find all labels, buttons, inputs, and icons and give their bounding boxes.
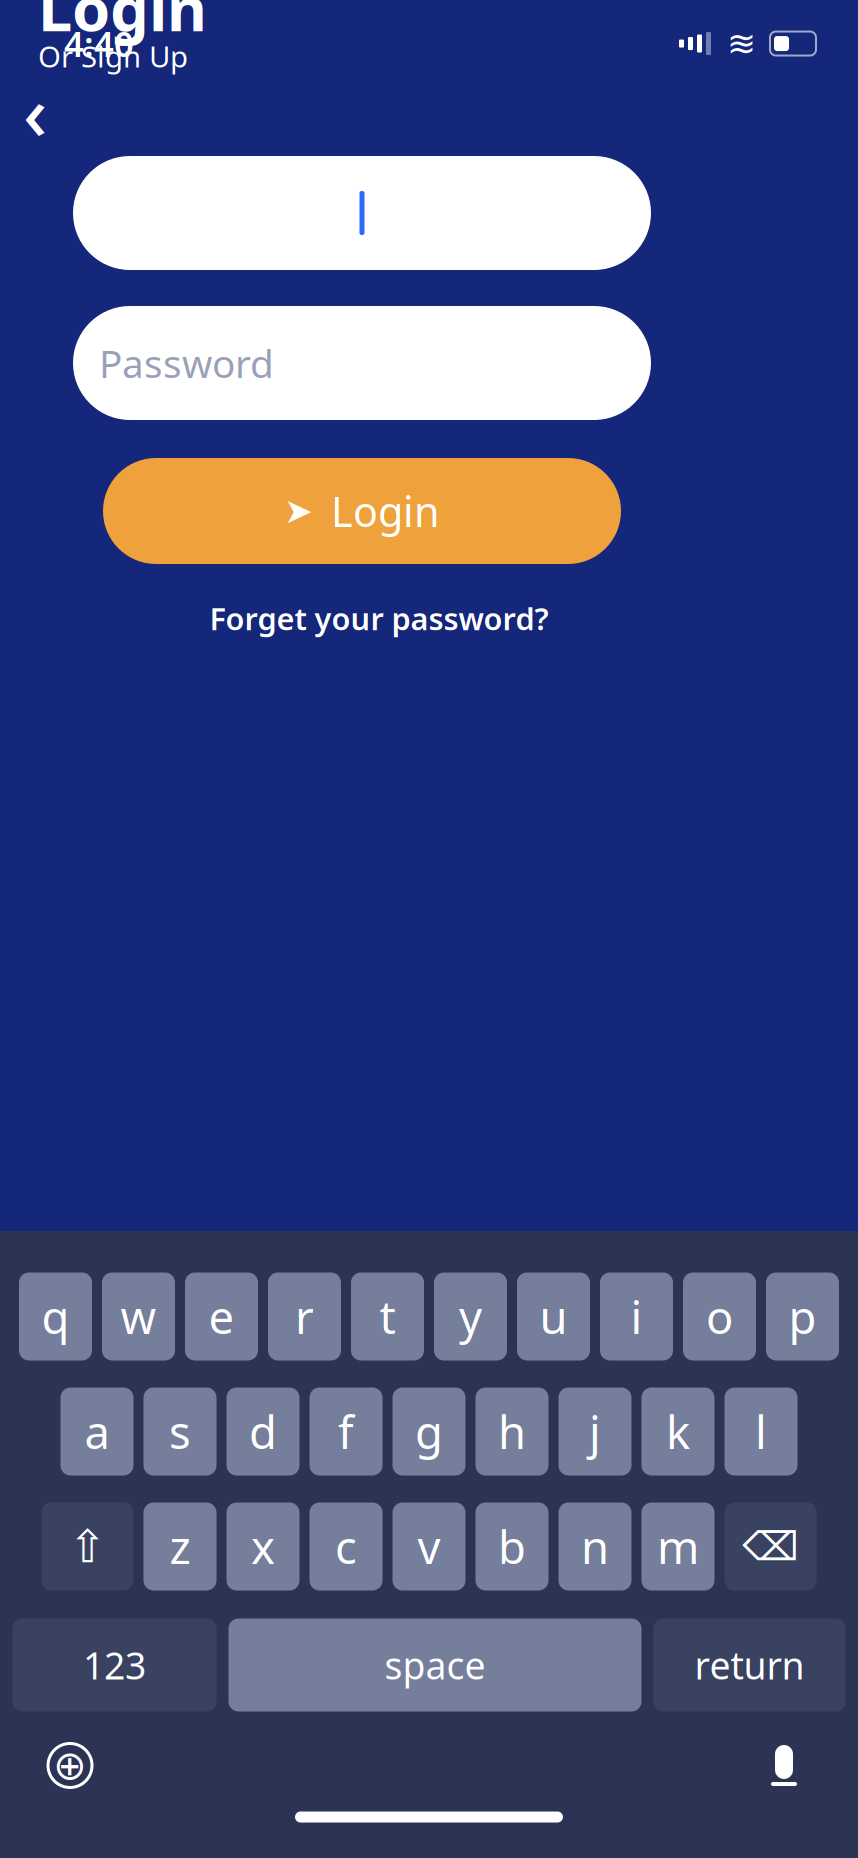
button[interactable]: l	[724, 1387, 797, 1475]
button[interactable]: q	[19, 1272, 92, 1360]
staticText: 123	[83, 1640, 146, 1690]
staticText: m	[657, 1516, 699, 1577]
staticText: s	[169, 1401, 191, 1462]
staticText: y	[459, 1286, 482, 1347]
staticText: h	[498, 1401, 526, 1462]
staticText: b	[498, 1516, 526, 1577]
staticText: e	[208, 1286, 234, 1347]
button[interactable]: k	[641, 1387, 714, 1475]
button[interactable]: x	[226, 1502, 299, 1590]
button[interactable]: h	[475, 1387, 548, 1475]
staticText: i	[630, 1286, 642, 1347]
button[interactable]: z	[143, 1502, 216, 1590]
button[interactable]: space	[228, 1618, 641, 1711]
button[interactable]: Forget your password?	[199, 588, 558, 649]
staticText: ⇧	[68, 1521, 106, 1572]
button[interactable]: d	[226, 1387, 299, 1475]
staticText: w	[120, 1286, 156, 1347]
button[interactable]: r	[268, 1272, 341, 1360]
staticText: Login	[38, 0, 207, 48]
staticText: Password	[99, 337, 274, 389]
staticText: r	[295, 1286, 314, 1347]
button[interactable]	[73, 156, 651, 270]
staticText: j	[589, 1401, 601, 1462]
button[interactable]: m	[641, 1502, 714, 1590]
staticText: v	[417, 1516, 440, 1577]
staticText: u	[539, 1286, 567, 1347]
button[interactable]: i	[600, 1272, 673, 1360]
button[interactable]: ➤	[103, 458, 621, 564]
staticText: ⌫	[742, 1524, 799, 1569]
staticText: space	[384, 1640, 485, 1690]
staticText: x	[251, 1516, 275, 1577]
button[interactable]: s	[143, 1387, 216, 1475]
button[interactable]: p	[766, 1272, 839, 1360]
staticText: f	[338, 1401, 354, 1462]
staticText: ⊕	[53, 1743, 87, 1788]
button[interactable]: Password	[73, 306, 651, 420]
button[interactable]: return	[653, 1618, 845, 1711]
staticText: Forget your password?	[209, 598, 548, 639]
button[interactable]: u	[517, 1272, 590, 1360]
button[interactable]: v	[392, 1502, 465, 1590]
staticText: 4:40	[64, 20, 134, 66]
staticText: a	[84, 1401, 109, 1462]
button[interactable]: t	[351, 1272, 424, 1360]
staticText: p	[788, 1286, 816, 1347]
button[interactable]: j	[558, 1387, 631, 1475]
button[interactable]: c	[309, 1502, 382, 1590]
staticText: ≋	[727, 24, 756, 63]
staticText: l	[755, 1401, 767, 1462]
staticText: Or Sign Up	[38, 36, 188, 75]
button[interactable]: ⇧	[41, 1502, 133, 1590]
staticText: z	[169, 1516, 190, 1577]
staticText: g	[415, 1401, 443, 1462]
button[interactable]: a	[60, 1387, 133, 1475]
staticText: ‹	[23, 61, 47, 161]
button[interactable]: o	[683, 1272, 756, 1360]
button[interactable]: Dictation	[752, 1733, 816, 1797]
staticText: n	[581, 1516, 609, 1577]
staticText: t	[379, 1286, 395, 1347]
staticText: c	[335, 1516, 357, 1577]
staticText: d	[249, 1401, 277, 1462]
button[interactable]: 123	[12, 1618, 216, 1711]
button[interactable]: g	[392, 1387, 465, 1475]
staticText: ➤	[284, 491, 313, 531]
button[interactable]: y	[434, 1272, 507, 1360]
button[interactable]: w	[102, 1272, 175, 1360]
staticText: o	[706, 1286, 733, 1347]
button[interactable]: Next keyboard	[38, 1733, 102, 1797]
button[interactable]: e	[185, 1272, 258, 1360]
staticText: Login	[331, 484, 440, 538]
staticText: return	[694, 1640, 804, 1690]
button[interactable]: f	[309, 1387, 382, 1475]
button[interactable]: Back	[4, 80, 66, 142]
button[interactable]: b	[475, 1502, 548, 1590]
staticText: q	[41, 1286, 69, 1347]
button[interactable]: n	[558, 1502, 631, 1590]
staticText: k	[666, 1401, 690, 1462]
button[interactable]: ⌫	[724, 1502, 816, 1590]
